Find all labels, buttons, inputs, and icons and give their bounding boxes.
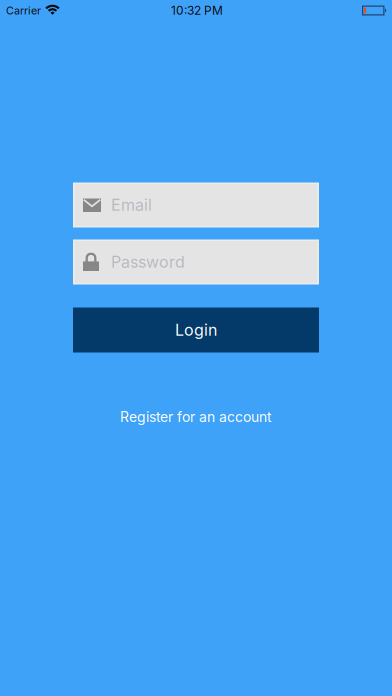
staticText: Email bbox=[111, 195, 152, 215]
button[interactable]: Login bbox=[73, 307, 319, 352]
staticText: Login bbox=[175, 320, 217, 340]
button[interactable]: Email bbox=[73, 182, 319, 227]
staticText: Password bbox=[111, 252, 185, 272]
staticText: Register for an account bbox=[120, 408, 272, 425]
button[interactable]: Password bbox=[73, 239, 319, 284]
staticText: Carrier bbox=[6, 4, 41, 17]
staticText: 10:32 PM bbox=[171, 3, 223, 18]
button[interactable]: Register for an account bbox=[120, 408, 272, 425]
